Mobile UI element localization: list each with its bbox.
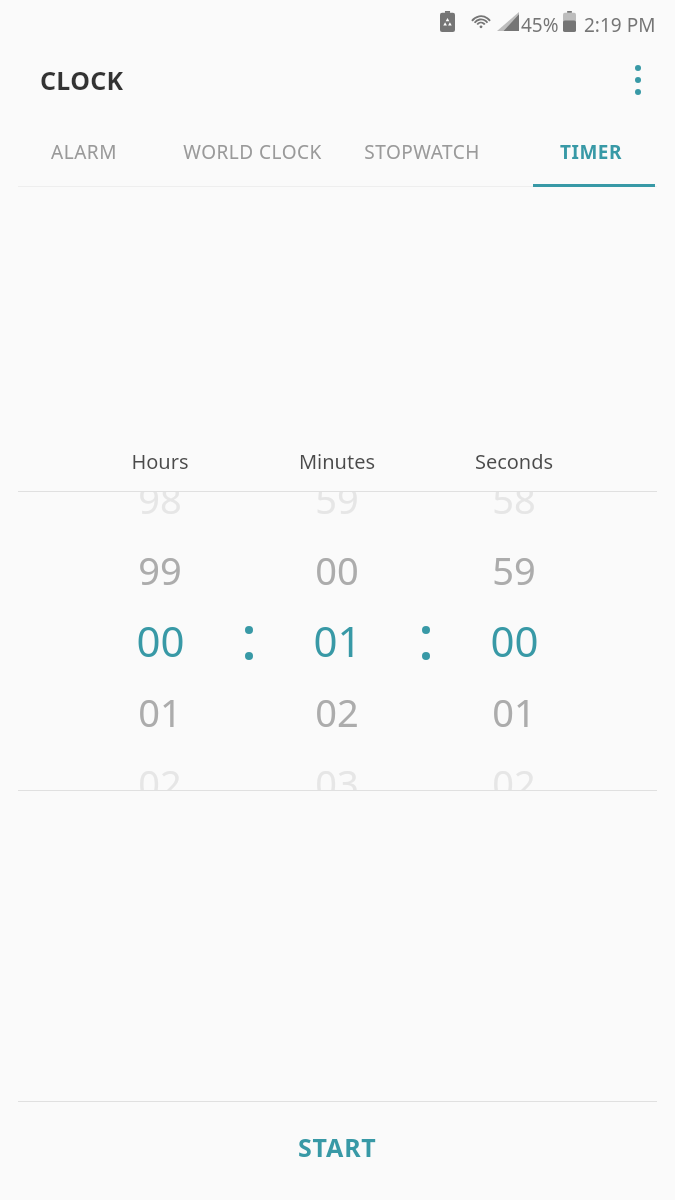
staticText: 59 — [492, 544, 536, 596]
staticText: 00 — [315, 544, 359, 596]
button[interactable]: 02 — [454, 754, 574, 790]
staticText: 01 — [138, 686, 182, 738]
staticText: 02 — [492, 757, 536, 790]
staticText: 00 — [490, 612, 539, 669]
staticText: 03 — [315, 757, 359, 790]
button[interactable]: 59 — [454, 541, 574, 598]
button[interactable]: 99 — [100, 541, 220, 598]
button[interactable]: WORLD CLOCK — [168, 117, 337, 187]
button[interactable]: 02 — [100, 754, 220, 790]
staticText: 02 — [138, 757, 182, 790]
button[interactable]: 01 — [100, 683, 220, 740]
button[interactable]: 00 — [454, 609, 574, 672]
staticText: ALARM — [51, 139, 117, 165]
staticText: 58 — [492, 492, 536, 525]
staticText: STOPWATCH — [364, 139, 480, 165]
button[interactable]: 03 — [277, 754, 397, 790]
button[interactable]: 01 — [454, 683, 574, 740]
button[interactable]: 59 — [277, 492, 397, 527]
staticText: START — [298, 1130, 377, 1164]
button[interactable]: 98 — [100, 492, 220, 527]
button[interactable]: 02 — [277, 683, 397, 740]
button[interactable]: START — [0, 1102, 675, 1200]
button[interactable]: ALARM — [0, 117, 168, 187]
staticText: 59 — [315, 492, 359, 525]
button[interactable]: More options — [614, 56, 662, 104]
staticText: TIMER — [560, 139, 622, 165]
staticText: 00 — [136, 612, 185, 669]
button[interactable]: 01 — [277, 609, 397, 672]
button[interactable]: TIMER — [506, 117, 675, 187]
button[interactable]: STOPWATCH — [337, 117, 506, 187]
staticText: WORLD CLOCK — [183, 139, 322, 165]
staticText: 01 — [313, 612, 362, 669]
button[interactable]: 58 — [454, 492, 574, 527]
staticText: Hours — [115, 448, 205, 475]
staticText: Seconds — [459, 448, 569, 475]
staticText: Minutes — [287, 448, 387, 475]
staticText: 2:19 PM — [584, 12, 656, 38]
button[interactable]: 00 — [277, 541, 397, 598]
staticText: 01 — [492, 686, 536, 738]
button[interactable]: 00 — [100, 609, 220, 672]
staticText: 02 — [315, 686, 359, 738]
staticText: 99 — [138, 544, 182, 596]
staticText: 45% — [521, 12, 559, 38]
staticText: 98 — [138, 492, 182, 525]
staticText: CLOCK — [40, 63, 124, 97]
